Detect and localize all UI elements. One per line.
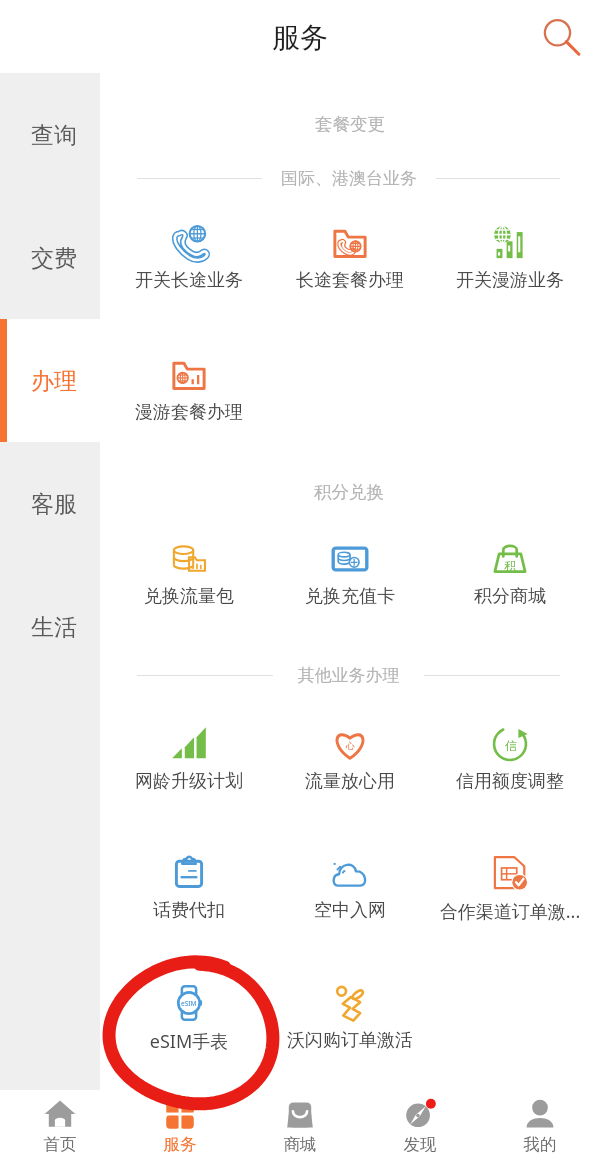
button[interactable]: 话费代扣 (109, 848, 269, 926)
button[interactable]: eSIM (109, 978, 269, 1056)
staticText: 信 (505, 738, 517, 753)
staticText: 办理 (31, 367, 77, 396)
staticText: 兑换充值卡 (270, 585, 430, 608)
staticText: 服务 (120, 1134, 240, 1155)
staticText: eSIM (181, 999, 197, 1008)
button[interactable]: 兑换充值卡 (270, 534, 430, 612)
button[interactable]: 漫游套餐办理 (109, 350, 269, 428)
staticText: 漫游套餐办理 (109, 401, 269, 424)
staticText: 客服 (31, 490, 77, 519)
button[interactable]: 开关长途业务 (109, 218, 269, 296)
button[interactable]: 沃闪购订单激活 (270, 978, 430, 1056)
staticText: 套餐变更 (220, 113, 480, 135)
button[interactable]: 发现 (360, 1090, 480, 1162)
staticText: 流量放心用 (270, 770, 430, 793)
button[interactable]: 心 (270, 719, 430, 797)
staticText: eSIM手表 (109, 1029, 269, 1054)
button[interactable]: 长途套餐办理 (270, 218, 430, 296)
staticText: 积分商城 (430, 585, 590, 608)
button[interactable]: 信 (430, 719, 590, 797)
staticText: 首页 (0, 1134, 120, 1155)
staticText: 我的 (480, 1134, 600, 1155)
button[interactable]: 开关漫游业务 (430, 218, 590, 296)
staticText: 交费 (31, 244, 77, 273)
button[interactable]: 合作渠道订单激... (430, 848, 590, 926)
button[interactable]: 首页 (0, 1090, 120, 1162)
button[interactable]: 网龄升级计划 (109, 719, 269, 797)
button[interactable]: 查询 (0, 73, 100, 196)
staticText: 积分兑换 (219, 481, 479, 503)
staticText: 兑换流量包 (109, 585, 269, 608)
staticText: 长途套餐办理 (270, 269, 430, 292)
staticText: 国际、港澳台业务 (252, 168, 446, 189)
button[interactable]: 办理 (0, 319, 100, 442)
staticText: 网龄升级计划 (109, 770, 269, 793)
button[interactable]: 空中入网 (270, 848, 430, 926)
button[interactable]: 我的 (480, 1090, 600, 1162)
staticText: 积 (504, 558, 516, 573)
staticText: 空中入网 (270, 899, 430, 922)
staticText: 发现 (360, 1134, 480, 1155)
button[interactable]: 积 (430, 534, 590, 612)
button[interactable]: 交费 (0, 196, 100, 319)
staticText: 心 (346, 740, 355, 751)
button[interactable]: 服务 (120, 1090, 240, 1162)
staticText: 其他业务办理 (263, 665, 434, 686)
button[interactable]: 兑换流量包 (109, 534, 269, 612)
button[interactable]: 商城 (240, 1090, 360, 1162)
button[interactable]: Search (530, 7, 590, 67)
staticText: 沃闪购订单激活 (270, 1029, 430, 1052)
staticText: 服务 (272, 20, 328, 55)
staticText: 商城 (240, 1134, 360, 1155)
staticText: 话费代扣 (109, 899, 269, 922)
button[interactable]: 生活 (0, 565, 100, 688)
staticText: 开关漫游业务 (430, 269, 590, 292)
staticText: 生活 (31, 613, 77, 642)
staticText: 开关长途业务 (109, 269, 269, 292)
staticText: 信用额度调整 (430, 770, 590, 793)
staticText: 查询 (31, 121, 77, 150)
button[interactable]: 客服 (0, 442, 100, 565)
staticText: 合作渠道订单激... (430, 899, 590, 924)
